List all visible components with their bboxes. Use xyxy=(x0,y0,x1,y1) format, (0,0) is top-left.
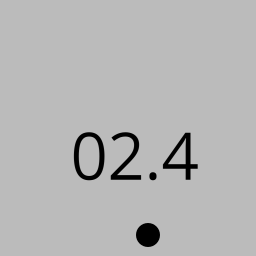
staticText: 02.4 xyxy=(70,110,198,199)
button[interactable]: Record xyxy=(136,223,160,247)
